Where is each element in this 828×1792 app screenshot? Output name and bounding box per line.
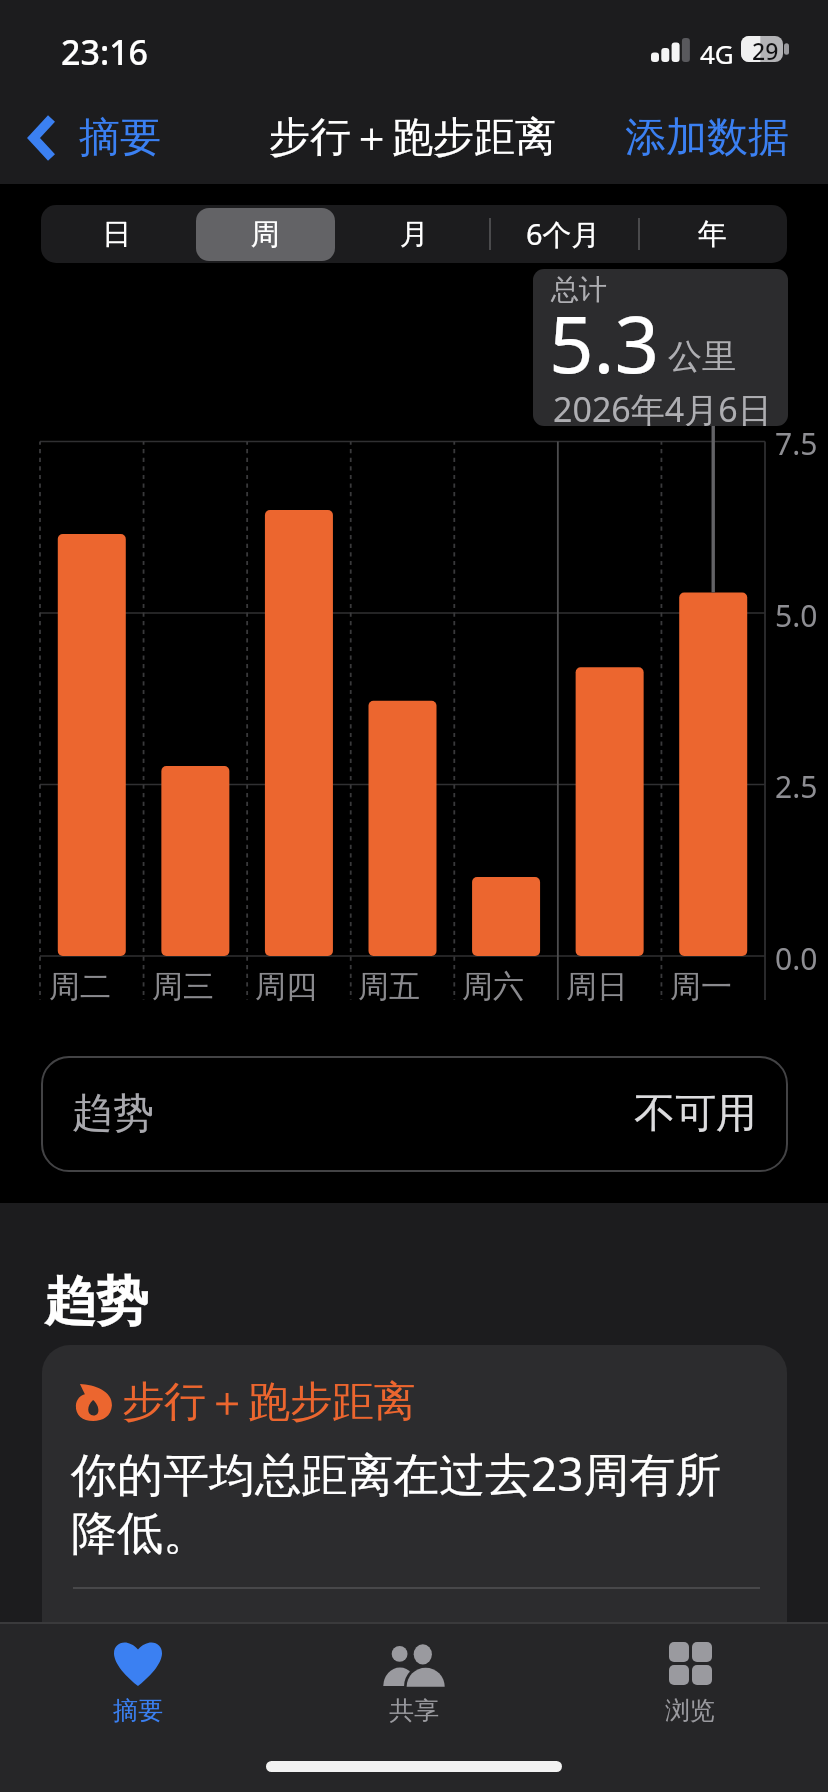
other: 摘要	[114, 1641, 162, 1686]
button[interactable]: 周	[191, 205, 340, 263]
other: 返回	[29, 114, 56, 162]
button[interactable]: 返回	[0, 112, 175, 164]
staticText: 总计	[551, 272, 607, 307]
button[interactable]: 共享	[276, 1622, 552, 1726]
button[interactable]: 添加数据	[625, 112, 828, 164]
staticText: 7.5	[775, 423, 818, 464]
staticText: 周三	[152, 967, 214, 1006]
other: 共享	[382, 1642, 446, 1686]
staticText: 周五	[358, 967, 420, 1006]
other: 浏览	[669, 1642, 712, 1685]
staticText: 月	[400, 216, 429, 253]
staticText: 周四	[255, 967, 317, 1006]
button[interactable]: 步行＋跑步距离	[42, 1345, 787, 1765]
button[interactable]: 年	[638, 205, 787, 263]
staticText: 5.3	[549, 290, 660, 396]
staticText: 周一	[670, 967, 732, 1006]
staticText: 步行＋跑步距离	[122, 1376, 416, 1429]
button[interactable]: 6个月	[489, 205, 638, 263]
staticText: 23:16	[61, 29, 149, 75]
staticText: 趋势	[72, 1088, 154, 1140]
staticText: 2.5	[775, 766, 818, 807]
staticText: 29	[752, 35, 779, 61]
staticText: 不可用	[634, 1088, 757, 1140]
staticText: 共享	[389, 1695, 439, 1726]
staticText: 年	[698, 216, 727, 253]
staticText: 周六	[462, 967, 524, 1006]
staticText: 周二	[49, 967, 111, 1006]
staticText: 日	[102, 216, 131, 253]
button[interactable]: 月	[340, 205, 489, 263]
staticText: 浏览	[665, 1695, 715, 1726]
staticText: 步行＋跑步距离	[269, 112, 556, 164]
staticText: 2026年4月6日	[553, 386, 772, 426]
staticText: 周日	[566, 967, 628, 1006]
staticText: 周	[251, 216, 280, 253]
staticText: 摘要	[113, 1695, 163, 1726]
staticText: 摘要	[79, 112, 161, 164]
staticText: 6个月	[526, 214, 601, 254]
button[interactable]: 浏览	[552, 1622, 828, 1726]
staticText: 趋势	[44, 1269, 148, 1335]
staticText: 4G	[700, 36, 734, 71]
button[interactable]: 日	[41, 205, 191, 263]
button[interactable]: 摘要	[0, 1622, 276, 1726]
staticText: 公里	[668, 335, 736, 378]
staticText: 0.0	[775, 938, 818, 979]
button[interactable]: 趋势	[42, 1057, 787, 1171]
staticText: 5.0	[775, 595, 818, 636]
staticText: 你的平均总距离在过去23周有所降低。	[71, 1442, 726, 1563]
